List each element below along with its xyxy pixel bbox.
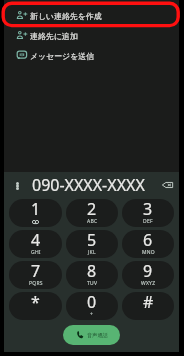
button[interactable]: 1	[9, 199, 62, 227]
staticText: 新しい連絡先を作成	[30, 11, 102, 21]
button[interactable]: 4	[9, 230, 62, 258]
button[interactable]: 音声通話	[63, 325, 120, 345]
button[interactable]: Backspace	[159, 177, 175, 193]
staticText: 1	[31, 199, 41, 220]
button[interactable]: 連絡先に追加	[4, 25, 179, 45]
button[interactable]: 0	[66, 292, 118, 320]
staticText: TUV	[87, 280, 98, 287]
staticText: ABC	[87, 218, 98, 225]
staticText: 3	[143, 199, 153, 220]
staticText: #	[143, 292, 154, 313]
button[interactable]: 8	[66, 261, 118, 289]
staticText: +	[90, 311, 94, 318]
staticText: 4	[31, 230, 41, 251]
button[interactable]: 2	[66, 199, 118, 227]
staticText: 音声通話	[87, 332, 108, 339]
staticText: 2	[87, 199, 97, 220]
staticText: 5	[87, 230, 97, 251]
staticText: 連絡先に追加	[30, 31, 78, 41]
button[interactable]: メッセージを送信	[4, 45, 179, 65]
button[interactable]: 7	[9, 261, 62, 289]
button[interactable]: #	[122, 292, 174, 320]
staticText: *	[31, 292, 40, 313]
staticText: WXYZ	[141, 280, 156, 287]
staticText: 8	[87, 261, 97, 282]
button[interactable]: More options	[9, 178, 25, 194]
button[interactable]: 9	[122, 261, 174, 289]
staticText: 9	[143, 261, 153, 282]
button[interactable]: 5	[66, 230, 118, 258]
staticText: 7	[31, 261, 41, 282]
staticText: DEF	[143, 218, 153, 225]
button[interactable]: *	[9, 292, 62, 320]
staticText: JKL	[88, 249, 96, 256]
staticText: 090-XXXX-XXXX	[32, 174, 145, 196]
staticText: 0	[87, 292, 97, 313]
button[interactable]: 3	[122, 199, 174, 227]
staticText: 6	[143, 230, 153, 251]
staticText: メッセージを送信	[30, 51, 95, 61]
button[interactable]: 新しい連絡先を作成	[4, 5, 179, 25]
staticText: MNO	[142, 249, 155, 256]
button[interactable]: 6	[122, 230, 174, 258]
staticText: GHI	[31, 249, 41, 256]
staticText: PQRS	[29, 280, 43, 287]
